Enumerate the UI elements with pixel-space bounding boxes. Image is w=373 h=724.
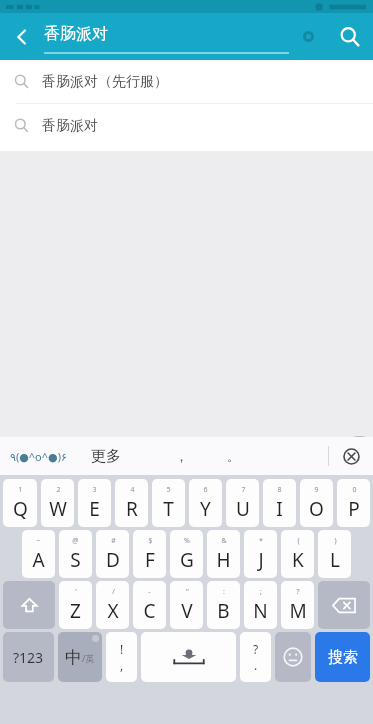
button[interactable]: Hide keyboard [329, 437, 373, 475]
button[interactable]: # [96, 530, 129, 578]
staticText: 9 [314, 485, 319, 495]
staticText: 更多 [91, 447, 121, 466]
staticText: & [221, 536, 227, 546]
button[interactable]: ٩(●^o^●)۶ [8, 445, 69, 468]
staticText: C [143, 598, 156, 624]
staticText: / [112, 587, 115, 597]
button[interactable]: 7 [226, 479, 259, 527]
staticText: ; [260, 587, 262, 597]
button[interactable]: ? [281, 581, 314, 629]
staticText: 1 [18, 485, 23, 495]
button[interactable]: Space [141, 632, 236, 682]
button[interactable]: - [133, 581, 166, 629]
button[interactable]: Backspace [318, 581, 370, 629]
button[interactable]: ! [106, 632, 137, 682]
staticText: 6 [203, 485, 208, 495]
staticText: X [107, 598, 119, 624]
staticText: A [32, 547, 45, 573]
staticText: O [309, 496, 324, 522]
button[interactable]: $ [133, 530, 166, 578]
staticText: $ [148, 536, 153, 546]
staticText: ?123 [13, 648, 44, 667]
button[interactable]: ， [167, 442, 195, 470]
staticText: /英 [82, 652, 95, 664]
button[interactable]: Clear text [289, 13, 327, 60]
button[interactable]: 香肠派对（先行服） [0, 60, 373, 103]
button[interactable]: % [170, 530, 203, 578]
button[interactable]: Shift [3, 581, 55, 629]
staticText: L [330, 547, 340, 573]
staticText: % [184, 536, 190, 546]
button[interactable]: ? [240, 632, 271, 682]
staticText: 4 [130, 485, 135, 495]
button[interactable]: 。 [219, 442, 247, 470]
button[interactable]: Emoji [275, 632, 311, 682]
button[interactable]: " [170, 581, 203, 629]
staticText: P [348, 496, 360, 522]
staticText: * [259, 536, 263, 546]
button[interactable]: 5 [152, 479, 185, 527]
button[interactable]: * [244, 530, 277, 578]
button[interactable]: ' [59, 581, 92, 629]
staticText: R [126, 496, 138, 522]
staticText: ~ [36, 536, 41, 546]
staticText: 香肠派对 [44, 24, 108, 44]
staticText: ? [253, 641, 259, 657]
button[interactable]: 6 [189, 479, 222, 527]
staticText: D [106, 547, 120, 573]
button[interactable]: Back [0, 13, 44, 60]
button[interactable]: / [96, 581, 129, 629]
staticText: : [223, 587, 225, 597]
staticText: 7 [241, 485, 246, 495]
button[interactable]: 1 [3, 479, 37, 527]
staticText: # [111, 536, 116, 546]
staticText: E [89, 496, 100, 522]
button[interactable]: ~ [22, 530, 55, 578]
staticText: , [120, 657, 124, 673]
button[interactable]: ; [244, 581, 277, 629]
button[interactable]: 香肠派对 [0, 104, 373, 147]
staticText: W [49, 496, 67, 522]
staticText: J [258, 547, 264, 573]
button[interactable]: ?123 [3, 632, 54, 682]
button[interactable]: @ [59, 530, 92, 578]
button[interactable]: : [207, 581, 240, 629]
staticText: U [236, 496, 250, 522]
button[interactable]: 4 [115, 479, 148, 527]
button[interactable]: 9 [300, 479, 333, 527]
button[interactable]: ( [281, 530, 314, 578]
staticText: Z [70, 598, 81, 624]
staticText: 8 [277, 485, 282, 495]
staticText: . [254, 657, 258, 673]
staticText: @ [72, 536, 79, 546]
button[interactable]: & [207, 530, 240, 578]
staticText: 。 [227, 448, 240, 464]
button[interactable]: 更多 [87, 443, 125, 470]
button[interactable]: 0 [337, 479, 370, 527]
staticText: G [180, 547, 194, 573]
staticText: V [181, 598, 193, 624]
staticText: 搜索 [328, 648, 358, 667]
button[interactable]: 8 [263, 479, 296, 527]
staticText: K [292, 547, 304, 573]
button[interactable]: 2 [41, 479, 74, 527]
button[interactable]: 中 [58, 632, 102, 682]
staticText: 3 [92, 485, 97, 495]
staticText: F [145, 547, 155, 573]
button[interactable]: Search [327, 13, 373, 60]
button[interactable]: 3 [78, 479, 111, 527]
button[interactable]: ) [318, 530, 351, 578]
staticText: 5 [166, 485, 171, 495]
staticText: ? [296, 587, 300, 597]
button[interactable]: 香肠派对 [44, 13, 289, 60]
button[interactable]: 搜索 [315, 632, 370, 682]
staticText: Q [13, 496, 28, 522]
staticText: ( [297, 536, 300, 546]
staticText: 2 [56, 485, 61, 495]
staticText: 香肠派对（先行服） [42, 73, 168, 91]
staticText: ٩(●^o^●)۶ [10, 449, 67, 464]
staticText: I [276, 496, 283, 522]
staticText: T [163, 496, 174, 522]
staticText: 0 [352, 485, 357, 495]
staticText: 香肠派对 [42, 117, 98, 135]
